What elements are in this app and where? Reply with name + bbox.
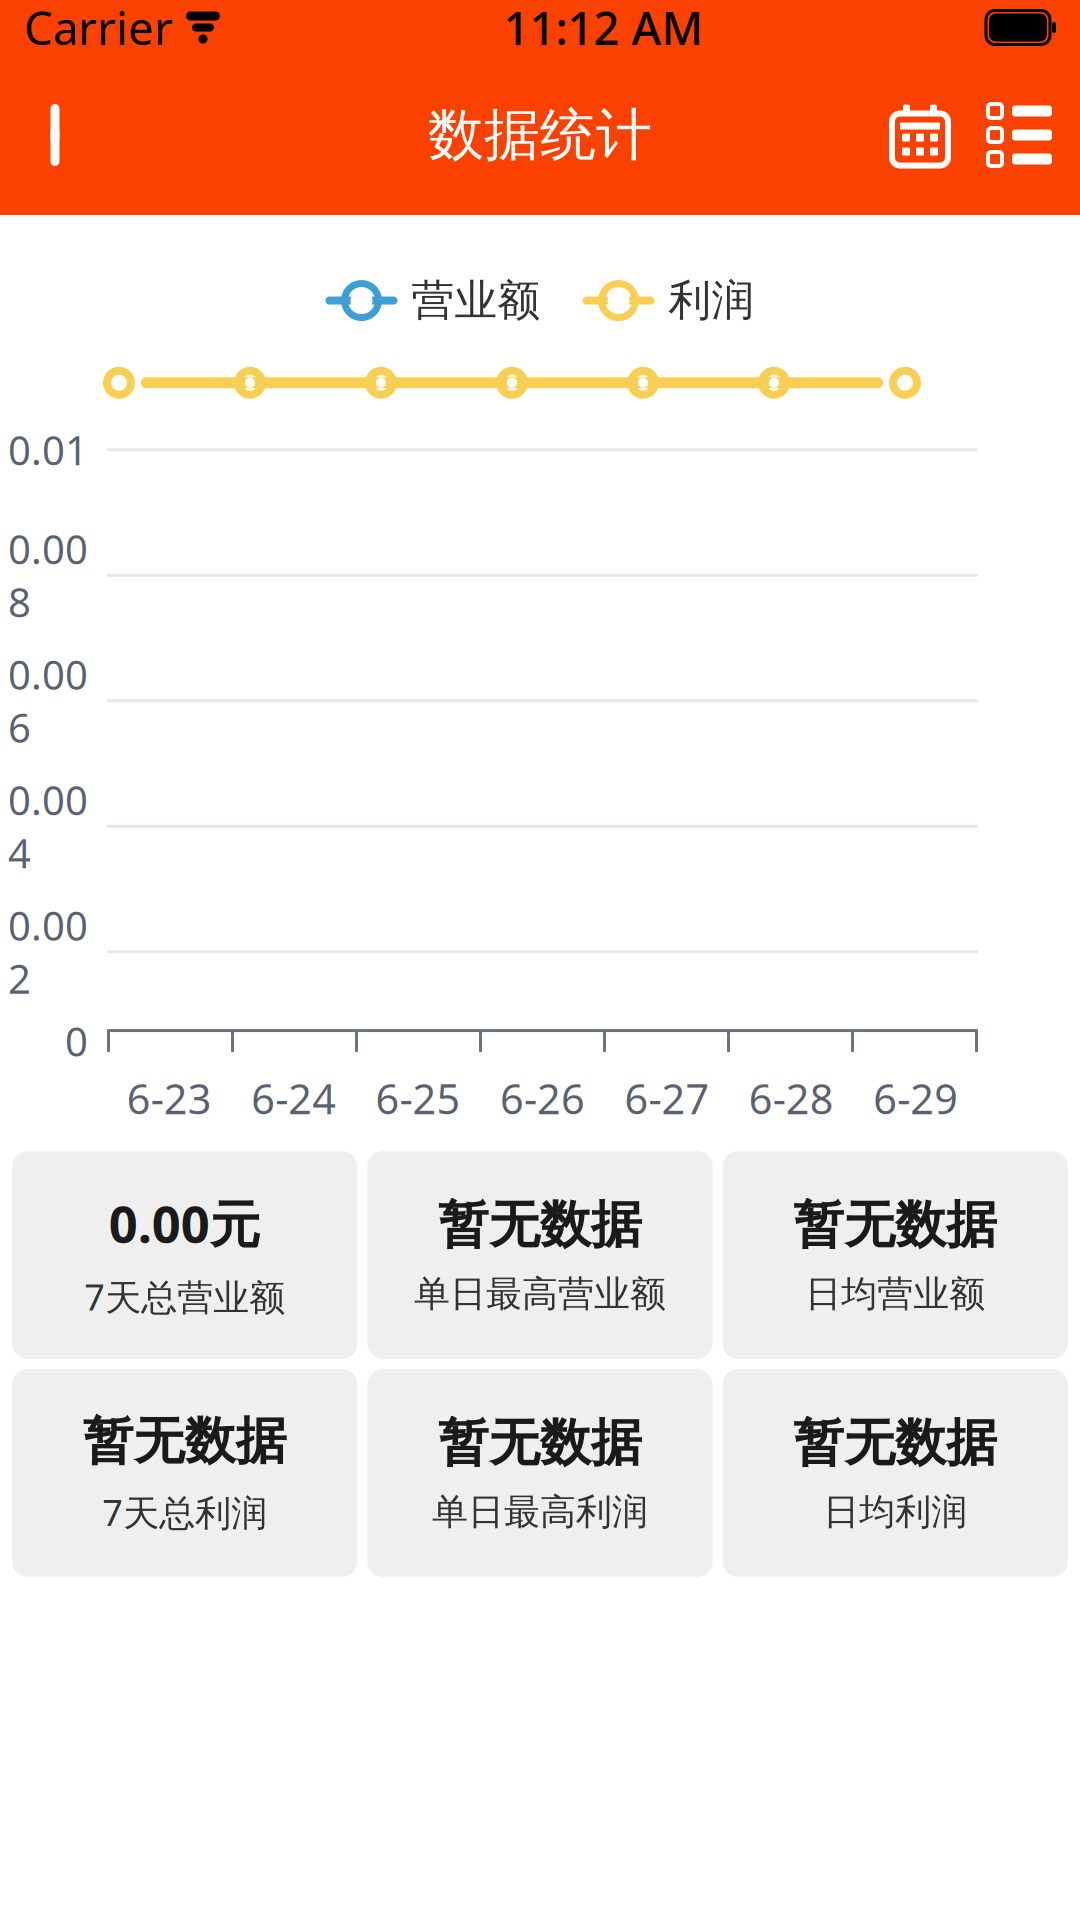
staticText: 日均利润 (823, 1490, 967, 1534)
staticText: 暂无数据 (793, 1194, 997, 1256)
staticText: 0.006 (8, 648, 88, 754)
staticText: Carrier (24, 0, 173, 58)
staticText: 营业额 (411, 274, 540, 327)
button[interactable]: 返回 (10, 85, 100, 185)
staticText: 日均营业额 (805, 1272, 985, 1316)
staticText: 0.01 (8, 423, 88, 476)
staticText: 7天总营业额 (84, 1273, 285, 1320)
button[interactable]: 0.00元 (12, 1151, 357, 1359)
staticText: 数据统计 (428, 101, 652, 169)
staticText: 6-25 (376, 1071, 461, 1126)
staticText: 暂无数据 (438, 1412, 642, 1474)
staticText: 7天总利润 (102, 1488, 267, 1536)
staticText: 利润 (668, 274, 754, 327)
staticText: 6-27 (624, 1071, 709, 1126)
staticText: 暂无数据 (793, 1412, 997, 1474)
staticText: 6-29 (873, 1071, 958, 1126)
staticText: 6-26 (500, 1071, 585, 1126)
staticText: 单日最高利润 (432, 1490, 648, 1534)
button[interactable]: 暂无数据 (723, 1369, 1068, 1577)
staticText: 0.004 (8, 773, 88, 879)
button[interactable]: 暂无数据 (12, 1369, 357, 1577)
staticText: 0.00元 (109, 1189, 261, 1257)
staticText: 0.008 (8, 522, 88, 628)
button[interactable]: 暂无数据 (367, 1369, 713, 1577)
button[interactable]: 暂无数据 (723, 1151, 1068, 1359)
staticText: 6-23 (127, 1071, 212, 1126)
staticText: 暂无数据 (438, 1194, 642, 1256)
staticText: 6-24 (251, 1071, 336, 1126)
staticText: 0 (65, 1014, 88, 1068)
staticText: 单日最高营业额 (414, 1272, 666, 1316)
staticText: 0.002 (8, 899, 88, 1005)
staticText: 暂无数据 (83, 1410, 287, 1472)
button[interactable]: 选择日期 (870, 85, 970, 185)
button[interactable]: 暂无数据 (367, 1151, 713, 1359)
button[interactable]: 列表 (970, 85, 1070, 185)
staticText: 11:12 AM (503, 0, 703, 58)
staticText: 6-28 (749, 1071, 834, 1126)
